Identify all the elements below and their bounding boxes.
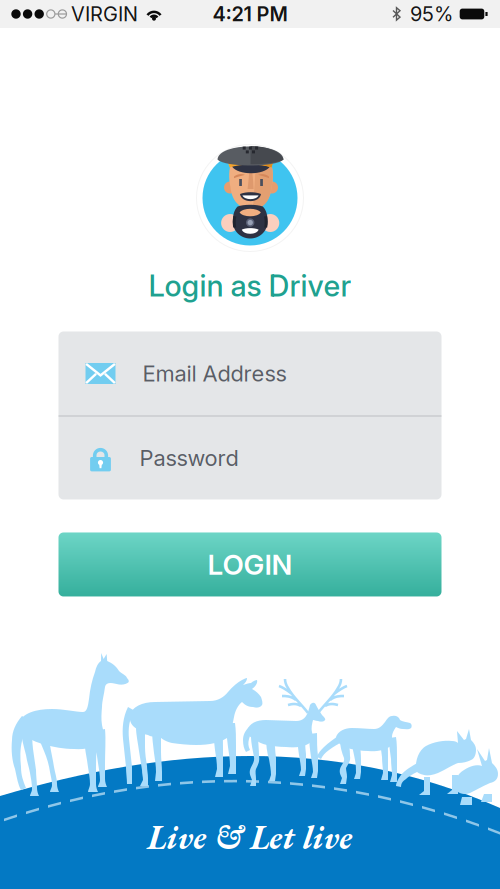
staticText: Live & Let live bbox=[147, 815, 352, 859]
staticText: 95% bbox=[410, 2, 453, 26]
staticText: VIRGIN bbox=[71, 2, 138, 26]
button[interactable]: LOGIN bbox=[58, 532, 441, 596]
staticText: Email Address bbox=[142, 360, 286, 387]
staticText: 4:21 PM bbox=[212, 2, 287, 26]
staticText: Login as Driver bbox=[148, 268, 351, 303]
staticText: Password bbox=[139, 445, 238, 471]
staticText: LOGIN bbox=[207, 548, 292, 581]
